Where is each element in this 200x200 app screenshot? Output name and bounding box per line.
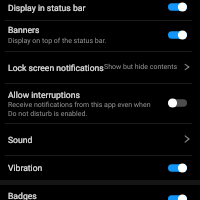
button[interactable]: Display in status bar bbox=[168, 1, 187, 13]
button[interactable] bbox=[0, 0, 200, 19]
button[interactable]: Allow interruptions bbox=[168, 97, 187, 109]
staticText: Allow interruptions bbox=[8, 90, 80, 100]
staticText: Sound bbox=[8, 135, 33, 145]
button[interactable]: Sound bbox=[181, 133, 193, 145]
button[interactable]: Badges bbox=[168, 193, 187, 200]
button[interactable] bbox=[0, 156, 200, 180]
button[interactable] bbox=[0, 52, 200, 83]
button[interactable] bbox=[0, 185, 200, 200]
button[interactable]: Banners bbox=[168, 29, 187, 41]
staticText: Banners bbox=[8, 25, 40, 35]
staticText: Display on top of the status bar. bbox=[8, 37, 107, 45]
button[interactable] bbox=[0, 20, 200, 51]
button[interactable] bbox=[0, 124, 200, 155]
button[interactable] bbox=[0, 84, 200, 123]
staticText: Receive notifications from this app even… bbox=[8, 101, 151, 117]
staticText: Show but hide contents bbox=[104, 63, 178, 71]
staticText: Display in status bar bbox=[8, 3, 86, 13]
staticText: Lock screen notifications bbox=[8, 63, 104, 73]
staticText: Vibration bbox=[8, 163, 43, 173]
button[interactable]: Lock screen notifications bbox=[181, 61, 193, 73]
button[interactable]: Vibration bbox=[168, 162, 187, 174]
staticText: Badges bbox=[8, 191, 37, 200]
